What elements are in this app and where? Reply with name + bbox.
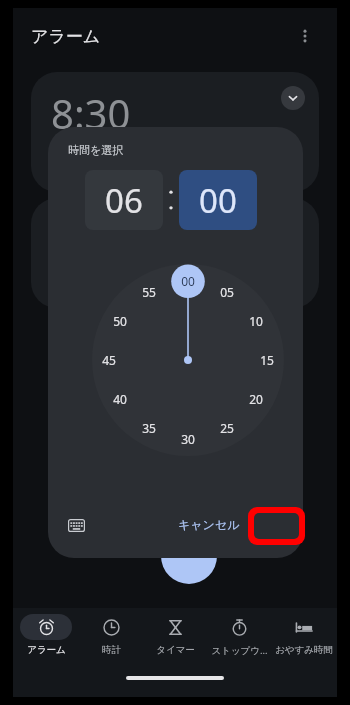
button[interactable]: OK [261, 508, 303, 540]
button[interactable]: Add alarm [161, 528, 217, 584]
button[interactable]: 8:30 [31, 72, 319, 192]
button[interactable]: 05 [214, 283, 240, 301]
staticText: 25 [220, 420, 234, 436]
button[interactable]: 15 [254, 351, 280, 369]
staticText: キャンセル [178, 517, 240, 532]
button[interactable]: 10 [243, 312, 269, 330]
button[interactable]: Expand alarm [281, 86, 305, 110]
button[interactable]: Switch to text input [62, 511, 90, 539]
staticText: 45 [102, 352, 116, 368]
staticText: 8:30 [51, 86, 131, 140]
staticText: 30 [181, 431, 195, 447]
button[interactable]: 55 [136, 283, 162, 301]
staticText: 50 [113, 313, 127, 329]
button[interactable]: タイマー [144, 614, 206, 656]
button[interactable]: おやすみ時間 [273, 614, 335, 656]
staticText: 15 [260, 352, 274, 368]
staticText: 20 [249, 391, 263, 407]
staticText: 00 [181, 273, 195, 289]
button[interactable]: 30 [175, 430, 201, 448]
staticText: アラーム [27, 644, 66, 656]
staticText: ストップウ… [211, 644, 268, 657]
staticText: 55 [142, 284, 156, 300]
button[interactable] [31, 198, 319, 308]
button[interactable]: キャンセル [170, 508, 248, 540]
staticText: 06 [105, 178, 143, 223]
staticText: 00 [199, 178, 237, 223]
button[interactable]: 50 [107, 312, 133, 330]
staticText: 35 [142, 420, 156, 436]
staticText: 40 [113, 391, 127, 407]
button[interactable]: 00 [179, 170, 257, 230]
button[interactable]: 40 [107, 390, 133, 408]
button[interactable]: 45 [96, 351, 122, 369]
button[interactable]: More options [291, 22, 319, 50]
button[interactable]: 00 [175, 272, 201, 290]
button[interactable]: 35 [136, 419, 162, 437]
button[interactable]: ストップウ… [208, 614, 270, 657]
button[interactable]: 25 [214, 419, 240, 437]
staticText: 05 [220, 284, 234, 300]
staticText: アラーム [31, 26, 101, 47]
staticText: 時間を選択 [68, 143, 124, 157]
button[interactable]: アラーム [15, 614, 77, 656]
staticText: タイマー [156, 644, 195, 656]
staticText: おやすみ時間 [275, 644, 333, 656]
button[interactable]: 20 [243, 390, 269, 408]
button[interactable]: 06 [85, 170, 163, 230]
staticText: 時計 [102, 644, 121, 656]
button[interactable]: 時計 [80, 614, 142, 656]
staticText: 10 [249, 313, 263, 329]
